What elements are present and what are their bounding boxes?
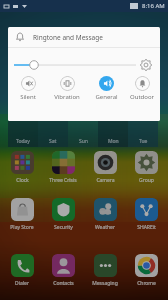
staticText: Group: [139, 177, 154, 184]
button[interactable]: Today: [8, 121, 38, 147]
staticText: Messaging: [92, 280, 118, 287]
staticText: Outdoor: [130, 93, 154, 101]
staticText: Tue: [139, 138, 148, 145]
staticText: General: [95, 93, 118, 101]
button[interactable]: Weather: [86, 198, 124, 231]
staticText: Today: [16, 138, 30, 145]
staticText: Clock: [16, 177, 29, 184]
button[interactable]: SHAREit: [127, 198, 165, 231]
staticText: Camera: [96, 177, 115, 184]
button[interactable]: Sat: [38, 121, 68, 147]
button[interactable]: Camera: [86, 151, 124, 184]
staticText: Dialer: [15, 280, 29, 287]
button[interactable]: Clock: [3, 151, 41, 184]
staticText: Weather: [95, 224, 115, 231]
button[interactable]: Contacts: [44, 254, 82, 287]
staticText: Contacts: [53, 280, 74, 287]
staticText: Sun: [79, 138, 88, 145]
staticText: Mon: [108, 138, 119, 145]
button[interactable]: Three Crisis: [44, 151, 82, 184]
staticText: Sat: [49, 138, 57, 145]
button[interactable]: Silent: [11, 76, 45, 101]
button[interactable]: Tue: [128, 121, 158, 147]
staticText: Chrome: [137, 280, 156, 287]
button[interactable]: Outdoor: [125, 76, 159, 101]
staticText: Play Store: [10, 224, 34, 231]
staticText: Silent: [20, 93, 36, 101]
button[interactable]: General: [89, 76, 123, 101]
button[interactable]: Group: [127, 151, 165, 184]
staticText: 8:16 AM: [142, 2, 165, 10]
button[interactable]: Sun: [68, 121, 98, 147]
button[interactable]: Security: [44, 198, 82, 231]
staticText: Ringtone and Message: [33, 33, 103, 42]
button[interactable]: Vibration: [50, 76, 84, 101]
button[interactable]: Dialer: [3, 254, 41, 287]
button[interactable]: Chrome: [127, 254, 165, 287]
button[interactable]: Sound settings: [139, 58, 153, 72]
button[interactable]: Ringtone volume: [8, 58, 160, 72]
button[interactable]: Play Store: [3, 198, 41, 231]
button[interactable]: Messaging: [86, 254, 124, 287]
button[interactable]: Mon: [98, 121, 128, 147]
staticText: Security: [54, 224, 73, 231]
staticText: Three Crisis: [49, 177, 77, 184]
staticText: SHAREit: [137, 224, 156, 231]
staticText: Vibration: [54, 93, 80, 101]
